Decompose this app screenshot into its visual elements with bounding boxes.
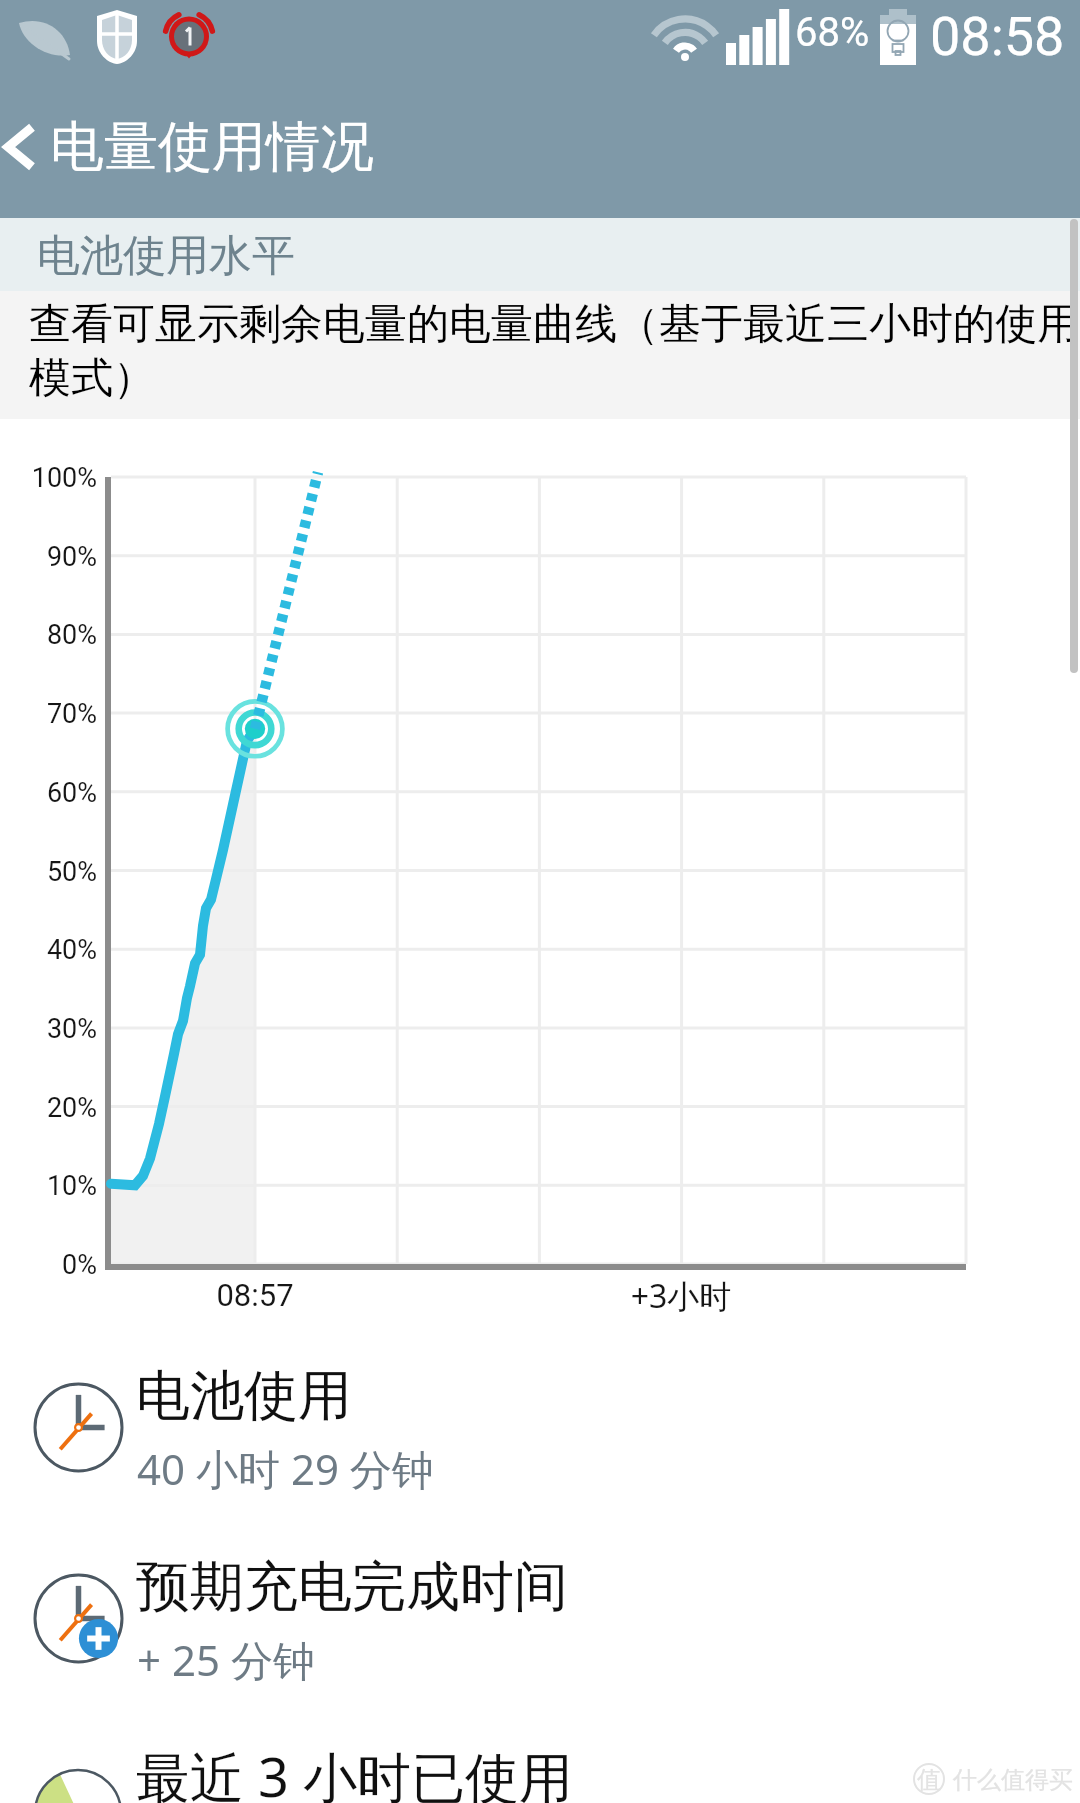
button[interactable]: 最近 3 小时已使用 xyxy=(0,1734,1080,1803)
staticText: 08:58 xyxy=(930,5,1065,68)
staticText: + 25 分钟 xyxy=(137,1631,315,1688)
staticText: 电池使用 xyxy=(136,1362,352,1430)
staticText: 08:57 xyxy=(180,1277,330,1313)
staticText: 90% xyxy=(0,541,97,573)
staticText: 60% xyxy=(0,777,97,809)
button[interactable]: 预期充电完成时间 xyxy=(0,1543,1080,1733)
staticText: 什么值得买 xyxy=(953,1765,1073,1795)
staticText: 20% xyxy=(0,1092,97,1124)
staticText: 预期充电完成时间 xyxy=(136,1553,568,1621)
staticText: 最近 3 小时已使用 xyxy=(136,1739,573,1803)
staticText: 查看可显示剩余电量的电量曲线（基于最近三小时的使用模式） xyxy=(29,298,1080,404)
staticText: 电量使用情况 xyxy=(50,113,374,181)
staticText: 40% xyxy=(0,934,97,966)
staticText: 100% xyxy=(0,462,97,494)
staticText: 30% xyxy=(0,1013,97,1045)
staticText: 值 xyxy=(917,1765,941,1795)
staticText: 40 小时 29 分钟 xyxy=(137,1440,434,1497)
staticText: 68% xyxy=(795,9,870,56)
staticText: 80% xyxy=(0,619,97,651)
staticText: 70% xyxy=(0,698,97,730)
staticText: 50% xyxy=(0,856,97,888)
staticText: 10% xyxy=(0,1170,97,1202)
staticText: 0% xyxy=(0,1249,97,1281)
staticText: +3小时 xyxy=(606,1274,756,1318)
button[interactable]: Back xyxy=(0,76,52,218)
button[interactable]: 电池使用 xyxy=(0,1352,1080,1542)
staticText: 电池使用水平 xyxy=(37,229,295,283)
